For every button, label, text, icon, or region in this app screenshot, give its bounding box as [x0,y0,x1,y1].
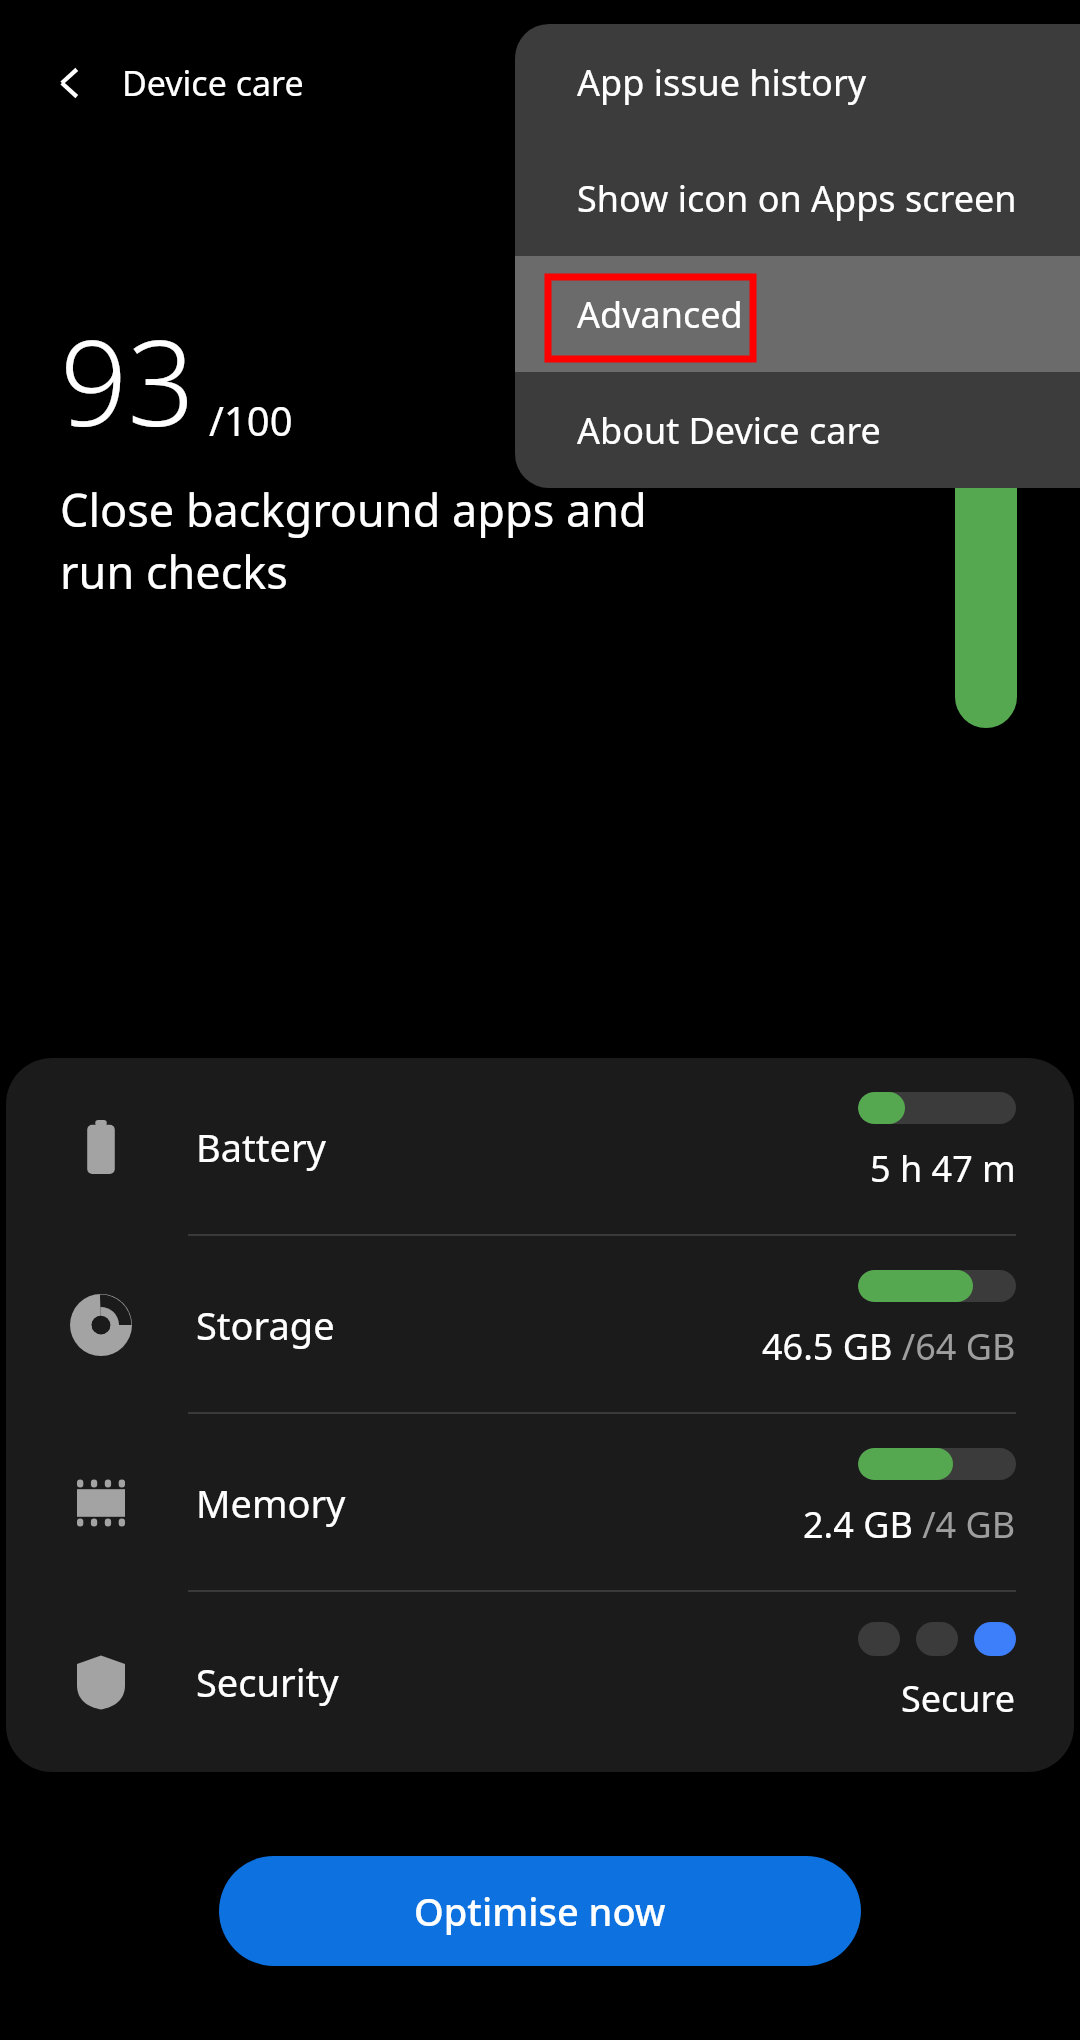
button[interactable]: About Device care [515,372,1080,488]
staticText: /100 [209,393,293,447]
staticText: Battery [196,1121,326,1173]
button[interactable]: Optimise now [219,1856,861,1966]
staticText: 5 h 47 m [870,1144,1016,1193]
button[interactable]: Storage [6,1236,1074,1414]
staticText: Close background apps and run checks [60,479,647,602]
staticText: About Device care [577,406,881,455]
staticText: Advanced [577,290,743,339]
staticText: Security [196,1656,339,1708]
staticText: Memory [196,1477,346,1529]
button[interactable]: App issue history [515,24,1080,140]
staticText: Show icon on Apps screen [577,174,1017,223]
staticText: Secure [901,1674,1016,1723]
staticText: 93 [60,300,195,461]
staticText: App issue history [577,58,867,107]
button[interactable]: Memory [6,1414,1074,1592]
button[interactable]: Advanced [515,256,1080,372]
button[interactable]: Battery [6,1058,1074,1236]
staticText: 2.4 GB /4 GB [803,1500,1016,1549]
button[interactable]: Show icon on Apps screen [515,140,1080,256]
button[interactable]: Back [34,47,106,119]
button[interactable]: Security [6,1592,1074,1772]
staticText: Optimise now [414,1885,666,1937]
staticText: 46.5 GB /64 GB [762,1322,1016,1371]
staticText: Storage [196,1299,335,1351]
staticText: Device care [122,60,304,106]
